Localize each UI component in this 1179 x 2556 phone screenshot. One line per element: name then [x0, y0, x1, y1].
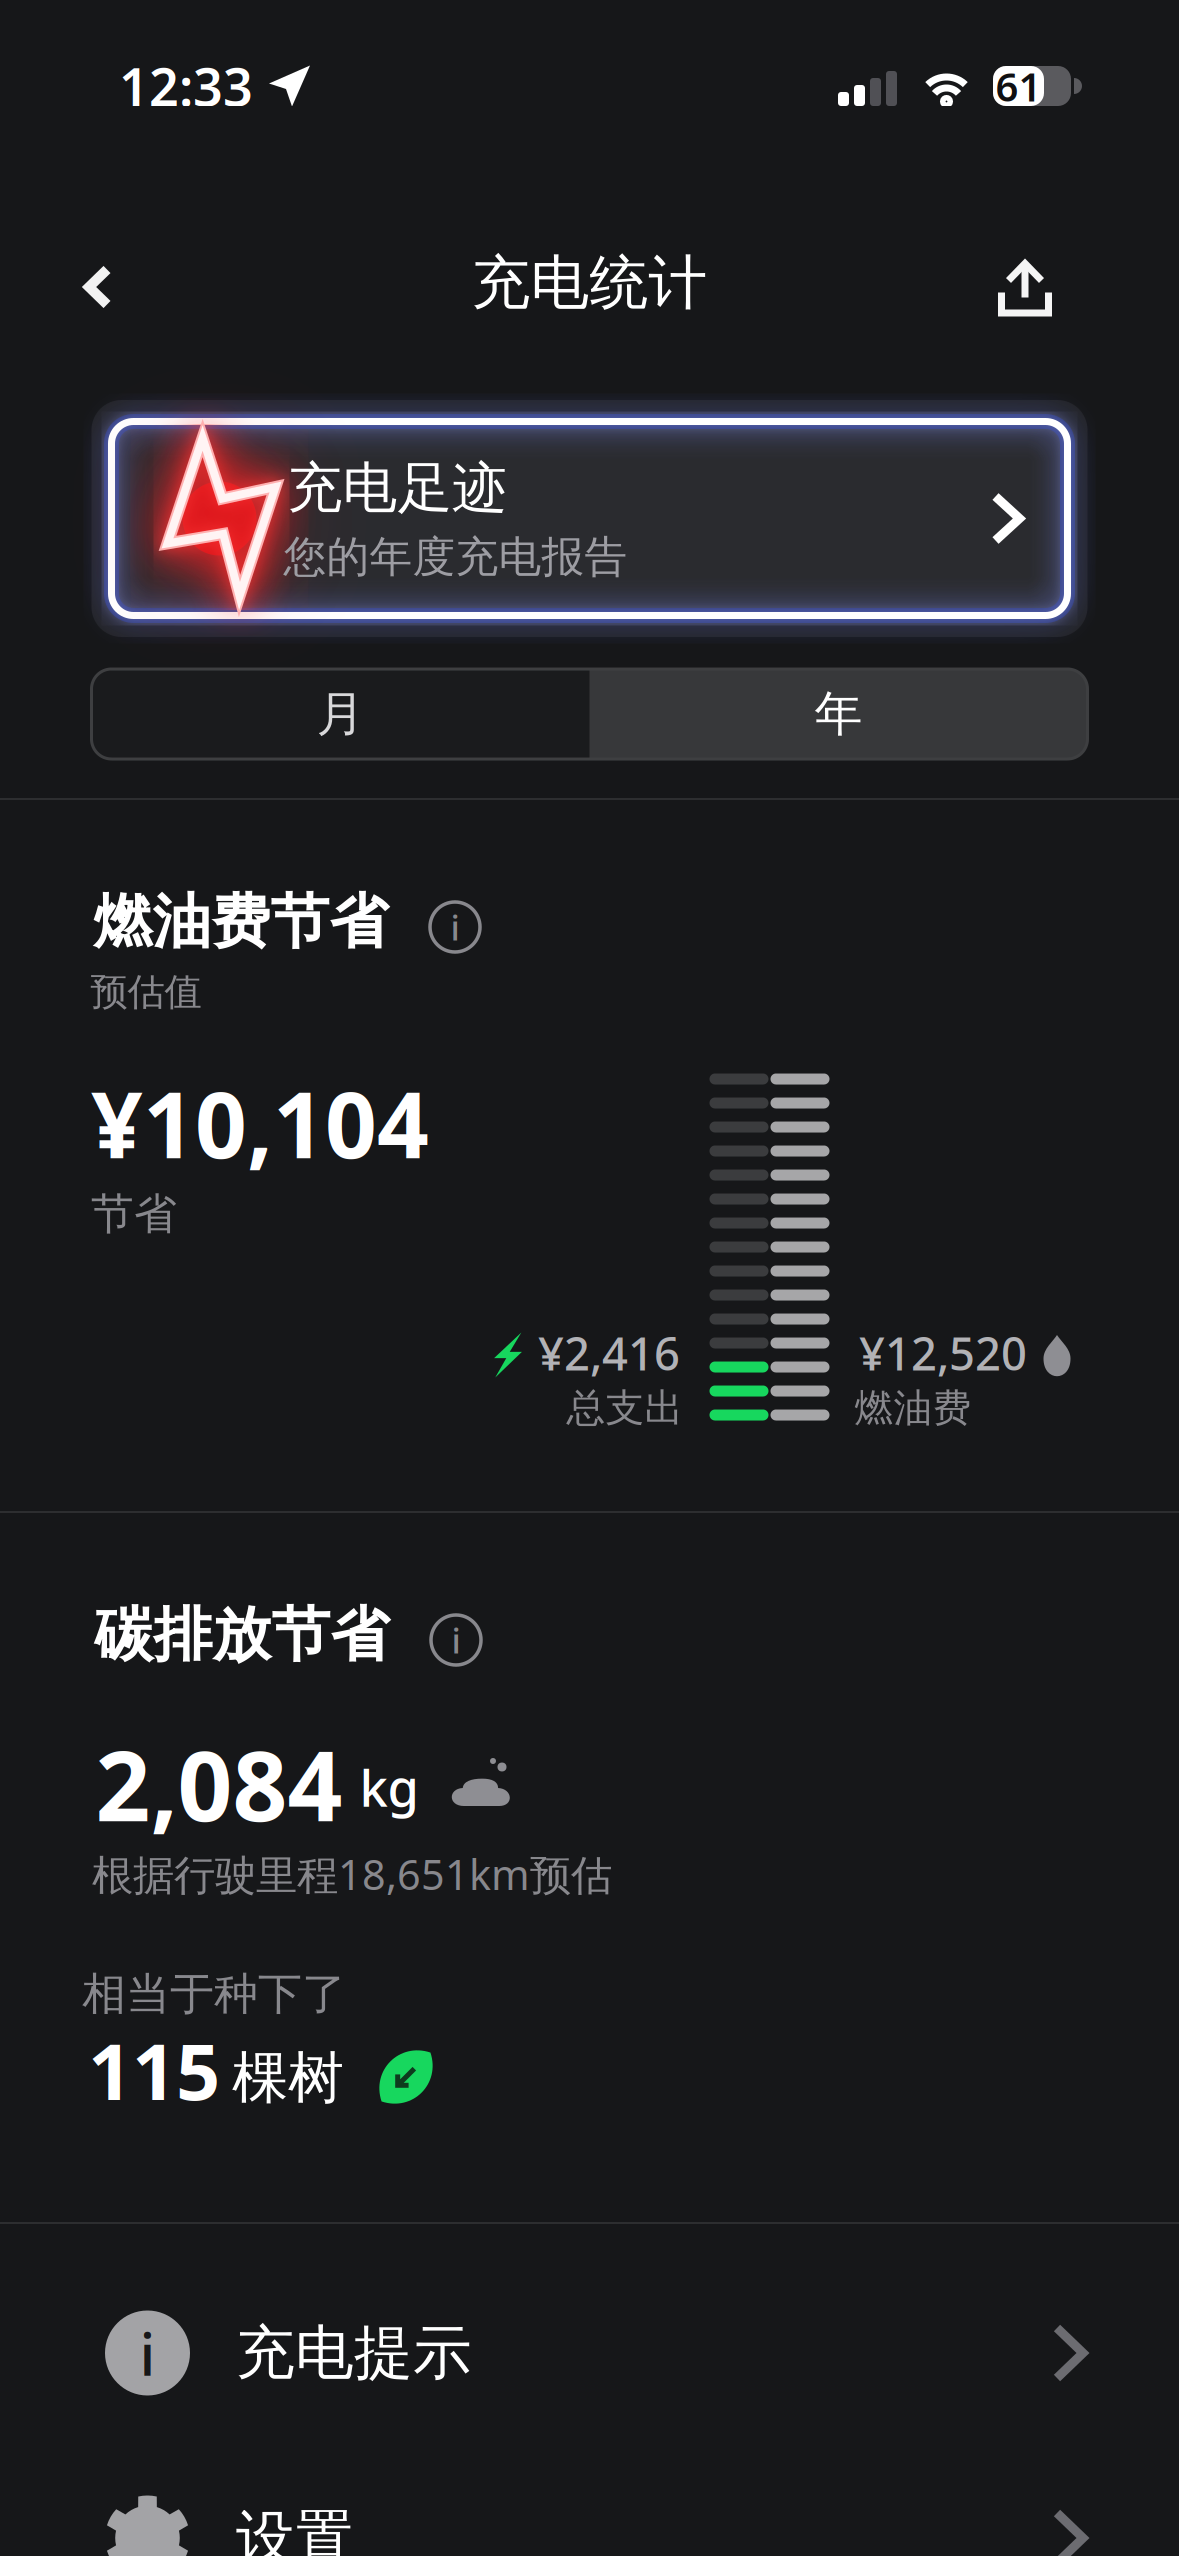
staticText: 设置: [236, 2502, 354, 2556]
staticText: ¥2,416: [538, 1323, 680, 1383]
button[interactable]: Share: [966, 227, 1084, 348]
staticText: 115: [88, 2019, 220, 2121]
staticText: 月: [316, 684, 364, 743]
staticText: 充电提示: [236, 2317, 472, 2389]
staticText: 您的年度充电报告: [283, 531, 627, 583]
staticText: i: [451, 1617, 460, 1663]
button[interactable]: Back: [45, 225, 151, 348]
staticText: 燃油费: [854, 1384, 971, 1432]
staticText: 61: [995, 59, 1041, 112]
staticText: i: [139, 2314, 155, 2392]
staticText: 12:33: [119, 51, 253, 121]
staticText: 年: [814, 684, 862, 743]
staticText: 根据行驶里程18,651km预估: [92, 1847, 612, 1901]
staticText: i: [450, 904, 459, 950]
staticText: 预估值: [90, 969, 201, 1015]
button[interactable]: 充电足迹: [91, 400, 1087, 637]
staticText: 相当于种下了: [82, 1967, 346, 2021]
staticText: 碳排放节省: [94, 1599, 389, 1671]
staticText: 2,084: [95, 1720, 342, 1848]
staticText: 燃油费节省: [93, 886, 388, 958]
button[interactable]: i: [0, 2260, 1179, 2445]
staticText: ¥12,520: [859, 1323, 1027, 1383]
button[interactable]: 年: [589, 669, 1087, 759]
staticText: 棵树: [232, 2044, 344, 2112]
staticText: 充电足迹: [287, 454, 507, 521]
staticText: kg: [359, 1753, 418, 1821]
staticText: 总支出: [566, 1384, 683, 1432]
button[interactable]: 设置: [0, 2445, 1179, 2556]
staticText: 充电统计: [471, 247, 707, 319]
staticText: 节省: [91, 1188, 177, 1240]
staticText: ¥10,104: [91, 1063, 429, 1183]
button[interactable]: 月: [91, 669, 589, 759]
